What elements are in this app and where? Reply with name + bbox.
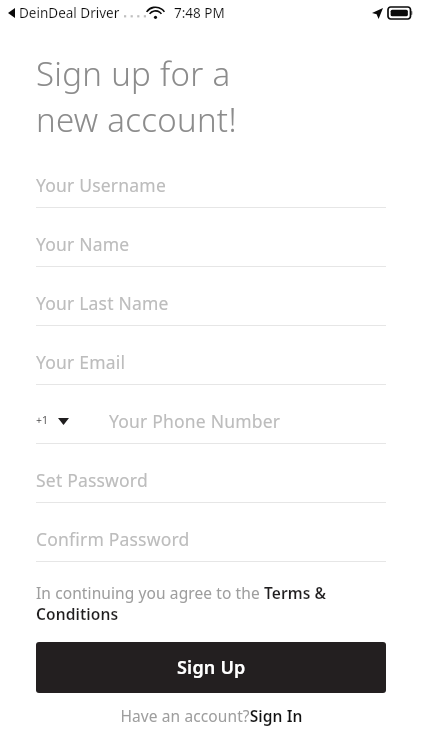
button[interactable]: Confirm Password — [36, 517, 386, 562]
staticText: Sign up for a new account! — [36, 51, 237, 142]
button[interactable]: Set Password — [36, 458, 386, 503]
staticText: Your Email — [36, 350, 126, 374]
button[interactable]: Have an account?Sign In — [120, 705, 303, 726]
staticText: Your Username — [36, 173, 166, 197]
button[interactable]: Your Email — [36, 340, 386, 385]
staticText: DeinDeal Driver — [19, 4, 120, 22]
button[interactable]: Your Name — [36, 222, 386, 267]
staticText: 7:48 PM — [174, 4, 225, 22]
button[interactable]: In continuing you agree to the Terms & C… — [36, 582, 386, 625]
button[interactable]: Your Phone Number — [109, 409, 386, 433]
staticText: Have an account?Sign In — [120, 705, 303, 726]
staticText: Your Last Name — [36, 291, 169, 315]
button[interactable]: Sign Up — [36, 642, 386, 693]
staticText: Sign Up — [177, 655, 246, 680]
staticText: +1 — [36, 413, 49, 427]
button[interactable]: Select country code — [36, 414, 75, 428]
staticText: Your Name — [36, 232, 130, 256]
button[interactable]: Your Last Name — [36, 281, 386, 326]
staticText: In continuing you agree to the Terms & C… — [36, 582, 386, 625]
staticText: Set Password — [36, 468, 148, 492]
button[interactable]: Your Username — [36, 163, 386, 208]
staticText: Confirm Password — [36, 527, 190, 551]
staticText: Your Phone Number — [109, 409, 281, 433]
